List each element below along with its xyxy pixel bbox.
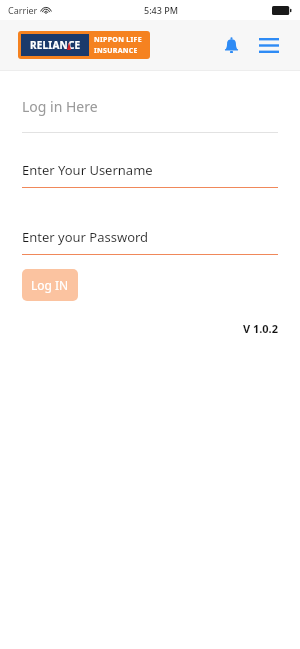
staticText: INSURANCE (94, 46, 138, 56)
staticText: Enter your Password (22, 228, 149, 246)
staticText: RELIANCE (30, 38, 81, 52)
staticText: Enter Your Username (22, 161, 153, 179)
button[interactable]: Menu (252, 28, 286, 62)
button[interactable]: Log IN (22, 269, 78, 301)
staticText: V 1.0.2 (22, 321, 278, 336)
button[interactable]: Notifications (214, 28, 248, 62)
button[interactable]: Enter Your Username (22, 161, 278, 188)
staticText: Carrier (8, 4, 38, 16)
button[interactable]: RELIANCE (18, 31, 150, 59)
staticText: Log IN (31, 277, 69, 293)
staticText: 5:43 PM (144, 4, 178, 16)
staticText: Log in Here (22, 97, 98, 116)
staticText: NIPPON LIFE (94, 35, 142, 45)
button[interactable]: Enter your Password (22, 228, 278, 255)
